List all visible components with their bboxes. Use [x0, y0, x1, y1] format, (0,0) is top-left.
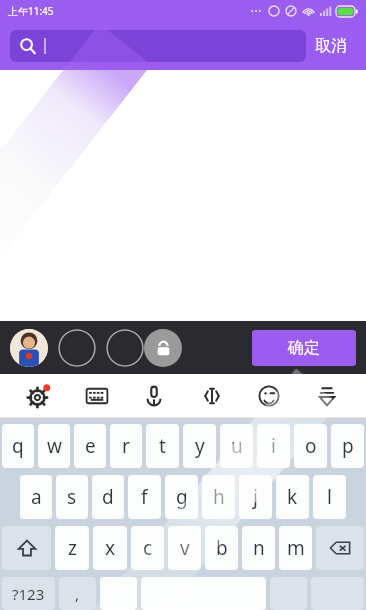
staticText: n: [253, 535, 265, 561]
button[interactable]: Shift: [2, 526, 51, 570]
button[interactable]: Locked: [144, 329, 182, 367]
button[interactable]: Keyboard layout: [75, 374, 119, 418]
staticText: m: [287, 535, 305, 561]
staticText: e: [85, 433, 96, 459]
staticText: z: [68, 535, 77, 561]
button[interactable]: z: [55, 526, 89, 570]
button[interactable]: k: [276, 475, 309, 519]
staticText: v: [180, 535, 190, 561]
button[interactable]: y: [183, 424, 216, 468]
staticText: h: [213, 484, 225, 510]
staticText: c: [143, 535, 153, 561]
button[interactable]: r: [110, 424, 142, 468]
staticText: j: [253, 484, 258, 510]
button[interactable]: Emoji: [247, 374, 291, 418]
button[interactable]: Empty photo slot: [106, 329, 144, 367]
button[interactable]: l: [313, 475, 346, 519]
staticText: s: [67, 484, 77, 510]
staticText: q: [12, 433, 24, 459]
staticText: k: [287, 484, 298, 510]
button[interactable]: g: [165, 475, 198, 519]
staticText: d: [102, 484, 114, 510]
staticText: i: [271, 433, 276, 459]
button[interactable]: q: [2, 424, 34, 468]
button[interactable]: e: [74, 424, 106, 468]
staticText: a: [31, 484, 42, 510]
staticText: g: [176, 484, 188, 510]
button[interactable]: Hide keyboard: [305, 374, 349, 418]
button[interactable]: Empty photo slot: [58, 329, 96, 367]
button[interactable]: ,: [59, 577, 96, 610]
staticText: w: [47, 433, 62, 459]
staticText: r: [122, 433, 130, 459]
button[interactable]: u: [220, 424, 253, 468]
button[interactable]: o: [294, 424, 327, 468]
button[interactable]: Text selection: [190, 374, 234, 418]
button[interactable]: Key: [100, 577, 137, 610]
staticText: b: [216, 535, 228, 561]
staticText: t: [159, 433, 166, 459]
button[interactable]: j: [239, 475, 272, 519]
staticText: u: [231, 433, 243, 459]
button[interactable]: s: [56, 475, 88, 519]
button[interactable]: h: [202, 475, 235, 519]
button[interactable]: p: [331, 424, 364, 468]
staticText: p: [342, 433, 354, 459]
button[interactable]: i: [257, 424, 290, 468]
button[interactable]: t: [146, 424, 179, 468]
button[interactable]: a: [20, 475, 52, 519]
button[interactable]: Search field: [10, 30, 306, 62]
button[interactable]: c: [131, 526, 164, 570]
button[interactable]: x: [93, 526, 127, 570]
staticText: 上午11:45: [8, 4, 54, 18]
button[interactable]: m: [279, 526, 312, 570]
button[interactable]: v: [168, 526, 201, 570]
button[interactable]: Delete: [316, 526, 364, 570]
button[interactable]: 取消: [306, 30, 356, 62]
button[interactable]: 确定: [252, 330, 356, 366]
button[interactable]: w: [38, 424, 70, 468]
button[interactable]: d: [92, 475, 124, 519]
button[interactable]: Settings: [17, 374, 61, 418]
staticText: l: [327, 484, 332, 510]
button[interactable]: ?123: [2, 577, 55, 610]
button[interactable]: f: [128, 475, 161, 519]
staticText: x: [105, 535, 116, 561]
button[interactable]: Selected photo: [10, 329, 48, 367]
staticText: ,: [75, 584, 80, 604]
button[interactable]: Voice input: [132, 374, 176, 418]
button[interactable]: b: [205, 526, 238, 570]
staticText: ?123: [12, 584, 45, 604]
staticText: o: [305, 433, 317, 459]
staticText: 取消: [315, 36, 347, 56]
staticText: y: [195, 433, 205, 459]
button[interactable]: n: [242, 526, 275, 570]
staticText: f: [141, 484, 148, 510]
staticText: 确定: [288, 338, 320, 358]
